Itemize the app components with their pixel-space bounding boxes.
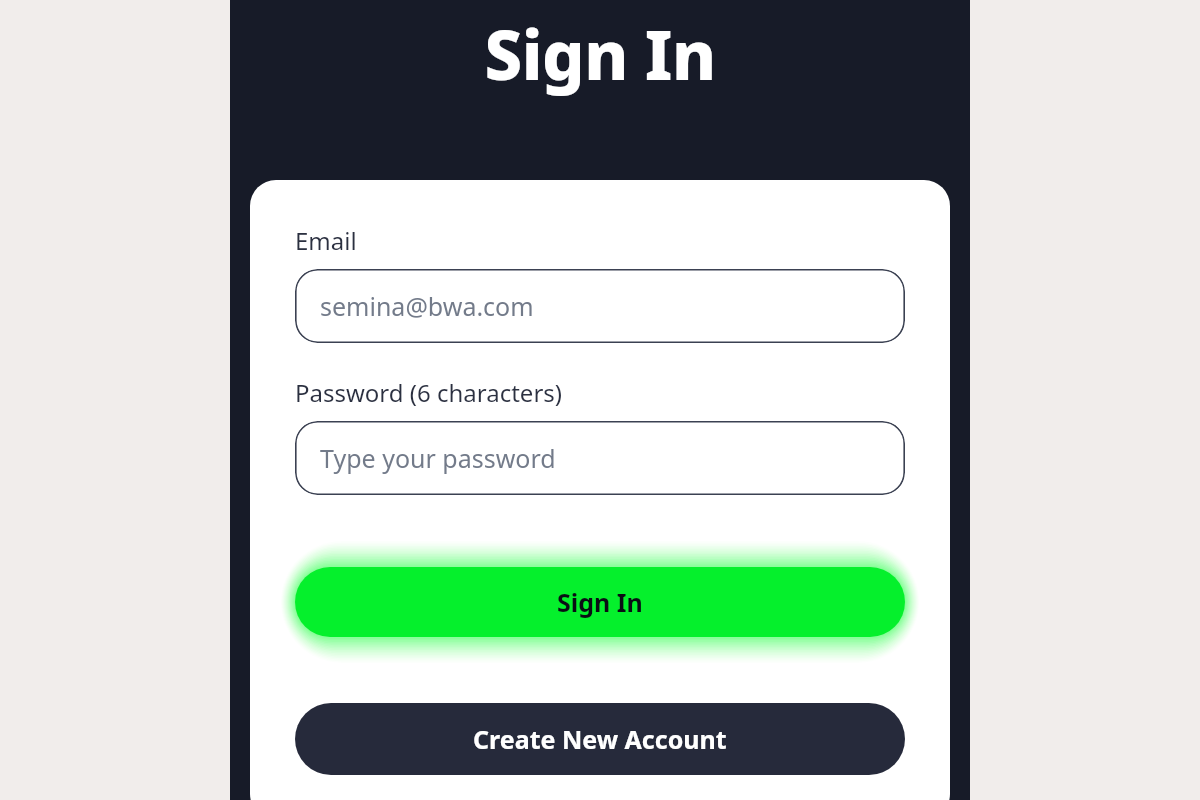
button[interactable]: semina@bwa.com [295,269,905,343]
staticText: Create New Account [473,722,727,756]
staticText: semina@bwa.com [320,289,534,323]
staticText: Password (6 characters) [295,376,562,409]
staticText: Sign In [230,8,970,99]
button[interactable]: Sign In [295,567,905,637]
staticText: Email [295,224,357,257]
button[interactable]: Type your password [295,421,905,495]
button[interactable]: Create New Account [295,703,905,775]
staticText: Type your password [320,441,556,475]
staticText: Sign In [557,585,643,619]
